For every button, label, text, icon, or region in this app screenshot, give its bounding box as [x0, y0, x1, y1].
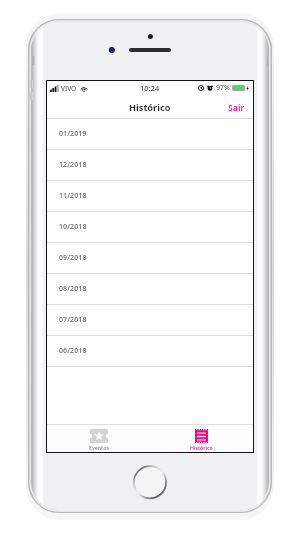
staticText: 11/2018 — [59, 191, 87, 201]
button[interactable]: 01/2019 — [47, 119, 253, 149]
button[interactable]: Histórico — [150, 425, 253, 452]
button[interactable]: 07/2018 — [47, 305, 253, 335]
staticText: Histórico — [129, 101, 171, 114]
button[interactable]: 11/2018 — [47, 181, 253, 211]
button[interactable]: 08/2018 — [47, 274, 253, 304]
staticText: VIVO — [61, 84, 77, 93]
staticText: 01/2019 — [59, 129, 87, 139]
staticText: Sair — [228, 102, 245, 114]
staticText: 09/2018 — [59, 253, 87, 263]
staticText: 12/2018 — [59, 160, 87, 170]
staticText: 08/2018 — [59, 284, 87, 294]
staticText: 10/2018 — [59, 222, 87, 232]
button[interactable]: Eventos — [47, 425, 150, 452]
button[interactable]: Sair — [220, 97, 253, 117]
button[interactable]: 06/2018 — [47, 336, 253, 366]
button[interactable]: 12/2018 — [47, 150, 253, 180]
button[interactable]: 10/2018 — [47, 212, 253, 242]
staticText: 97% — [216, 83, 230, 93]
staticText: 07/2018 — [59, 315, 87, 325]
button[interactable]: 09/2018 — [47, 243, 253, 273]
staticText: 10:24 — [140, 83, 160, 93]
staticText: Eventos — [89, 444, 109, 451]
staticText: Histórico — [190, 444, 213, 451]
staticText: 06/2018 — [59, 346, 87, 356]
